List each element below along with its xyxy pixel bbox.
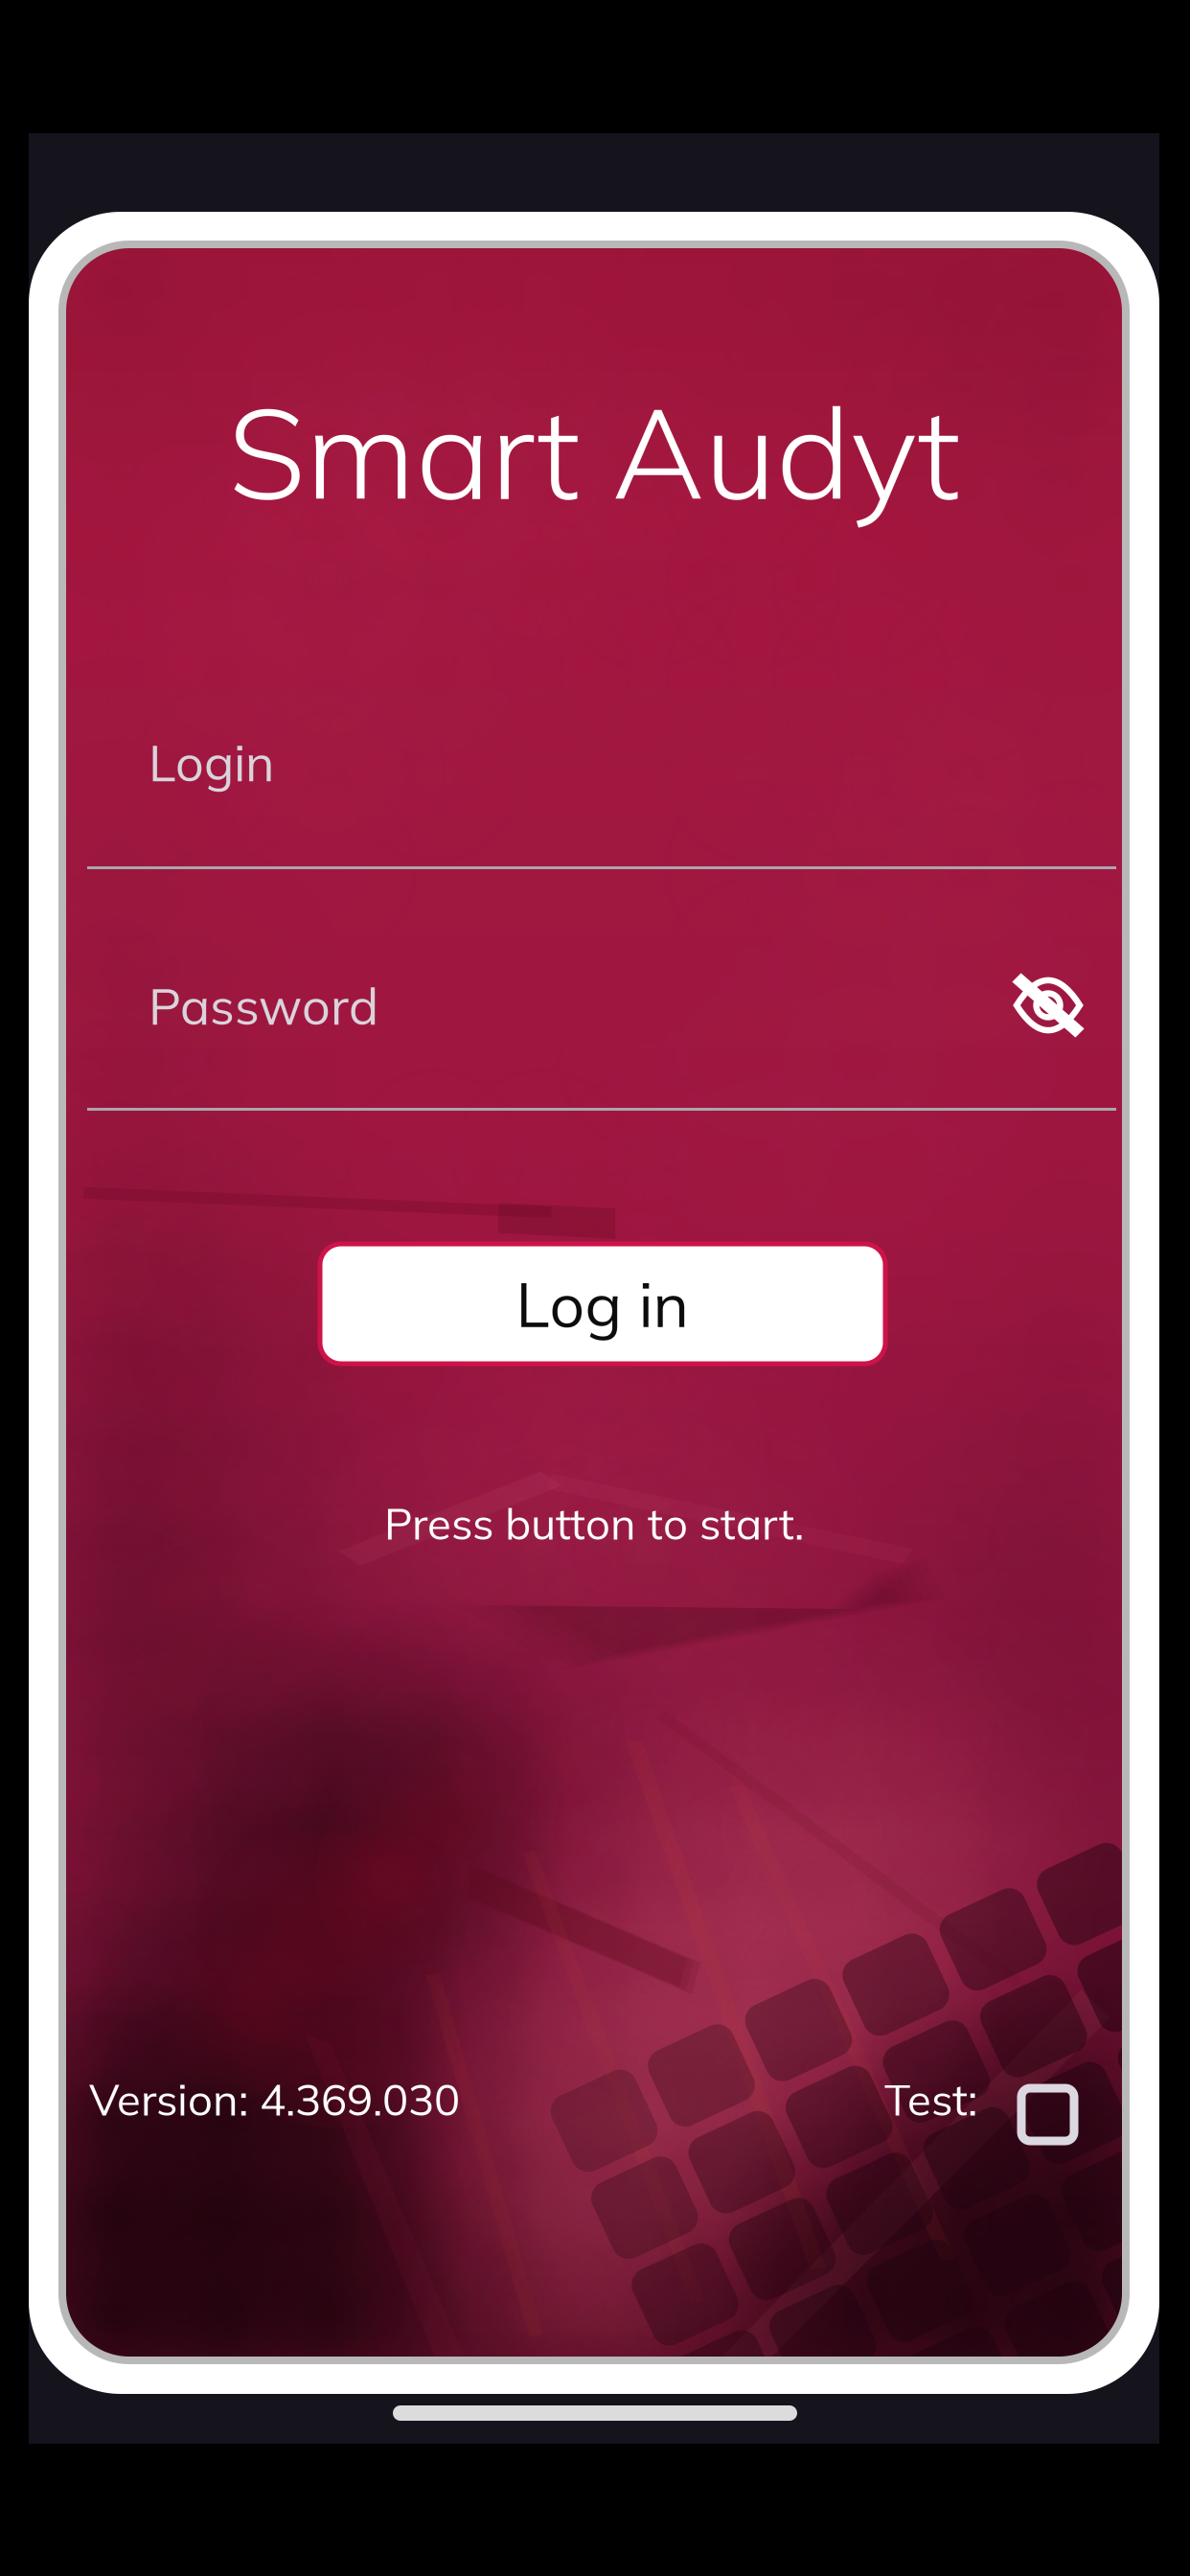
staticText: Test: [884,2072,977,2126]
staticText: Version: 4.369.030 [89,2072,460,2126]
staticText: Log in [516,1265,689,1342]
staticText: Smart Audyt [228,372,960,531]
staticText: Login [149,731,274,794]
staticText: Press button to start. [384,1496,804,1550]
button[interactable]: Show password [62,244,168,344]
staticText: Password [149,975,378,1037]
button[interactable]: Log in [62,244,628,364]
button[interactable]: Test mode [62,244,153,335]
